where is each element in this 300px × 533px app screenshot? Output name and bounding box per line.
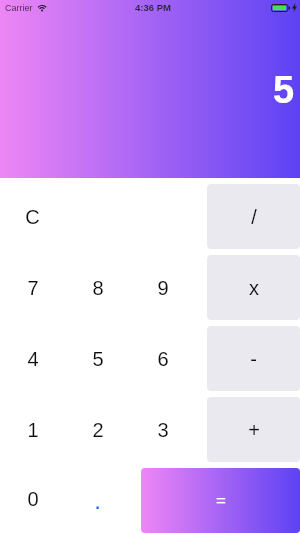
staticText: 0 bbox=[27, 488, 39, 510]
button[interactable]: 5 bbox=[65, 323, 130, 394]
button[interactable]: C bbox=[0, 181, 65, 252]
staticText: 2 bbox=[92, 419, 104, 441]
staticText: = bbox=[216, 491, 226, 510]
staticText: 5 bbox=[92, 348, 104, 370]
staticText: 7 bbox=[27, 277, 39, 299]
button[interactable]: 3 bbox=[130, 394, 195, 465]
staticText: 3 bbox=[157, 419, 169, 441]
button[interactable]: / bbox=[207, 184, 300, 249]
button[interactable]: - bbox=[207, 326, 300, 391]
other: Battery bbox=[271, 4, 290, 12]
button[interactable]: 2 bbox=[65, 394, 130, 465]
button[interactable]: 6 bbox=[130, 323, 195, 394]
button[interactable]: . bbox=[65, 465, 130, 533]
button[interactable]: 7 bbox=[0, 252, 65, 323]
button[interactable]: + bbox=[207, 397, 300, 462]
other: Charging bbox=[292, 3, 297, 12]
staticText: 6 bbox=[157, 348, 169, 370]
staticText: 8 bbox=[92, 277, 104, 299]
button[interactable]: = bbox=[141, 468, 300, 533]
staticText: . bbox=[94, 487, 101, 514]
staticText: + bbox=[248, 419, 260, 441]
button[interactable]: 4 bbox=[0, 323, 65, 394]
staticText: x bbox=[249, 277, 259, 299]
button[interactable]: 9 bbox=[130, 252, 195, 323]
staticText: 9 bbox=[157, 277, 169, 299]
button[interactable]: x bbox=[207, 255, 300, 320]
staticText: 5 bbox=[273, 69, 295, 111]
staticText: 4:36 PM bbox=[135, 2, 171, 13]
staticText: C bbox=[25, 206, 40, 228]
staticText: 4 bbox=[27, 348, 39, 370]
staticText: Carrier bbox=[5, 3, 33, 13]
staticText: 1 bbox=[27, 419, 39, 441]
button[interactable]: 0 bbox=[0, 465, 65, 533]
staticText: - bbox=[250, 348, 257, 370]
other: Wi-Fi bbox=[37, 4, 47, 12]
staticText: / bbox=[251, 206, 257, 228]
button[interactable]: 1 bbox=[0, 394, 65, 465]
button[interactable]: 8 bbox=[65, 252, 130, 323]
